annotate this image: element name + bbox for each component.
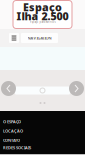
staticText: REDES SOCIAIS [3,145,31,150]
staticText: LOCAÇÃO [3,128,23,134]
staticText: CONTATO [3,138,20,143]
button[interactable]: O ESPAÇO [3,117,21,126]
staticText: NAVIGATION [27,35,51,41]
staticText: espaço para eventos [29,20,55,24]
button[interactable]: LOCAÇÃO [3,126,23,136]
button[interactable]: Open menu [9,33,19,43]
staticText: O ESPAÇO [3,119,21,124]
button[interactable]: Espaço Ilha 2.500 home [13,0,72,28]
button[interactable]: NAVIGATION [21,33,58,43]
button[interactable]: Next image [69,81,84,96]
button[interactable]: CONTATO [3,136,20,145]
button[interactable]: Previous image [1,81,16,96]
staticText: Ilha 2.500 [16,9,68,23]
staticText: Espaço [23,0,62,14]
